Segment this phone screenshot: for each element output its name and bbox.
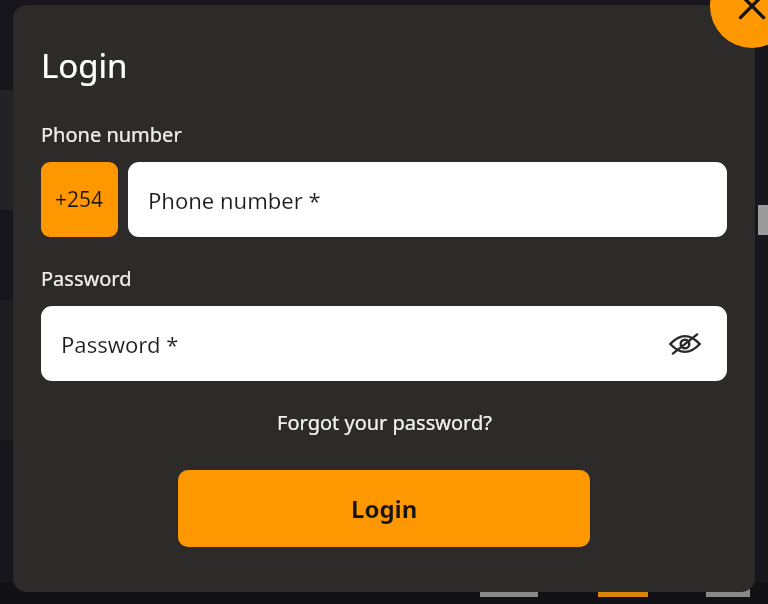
button[interactable]: Forgot your password? [269,405,500,440]
staticText: Login [41,43,128,88]
staticText: Password * [61,329,179,359]
staticText: Password [41,265,132,292]
staticText: Forgot your password? [277,409,492,436]
button[interactable]: Close [710,0,768,48]
button[interactable]: +254 [41,162,118,237]
button[interactable]: Phone number * [128,162,727,237]
button[interactable]: Show password [663,322,707,366]
staticText: Phone number * [148,185,321,215]
button[interactable]: Password * [41,306,727,381]
staticText: Login [351,492,418,525]
button[interactable]: Login [178,470,590,547]
staticText: +254 [55,185,104,214]
staticText: Phone number [41,121,182,148]
